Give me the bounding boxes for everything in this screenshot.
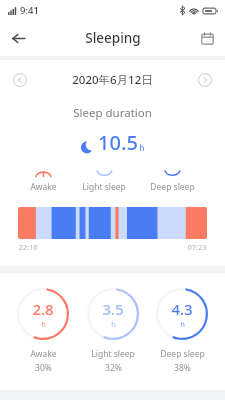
staticText: 4.3 bbox=[171, 299, 193, 319]
staticText: 9:41 bbox=[20, 4, 39, 17]
staticText: 32% bbox=[105, 362, 122, 374]
staticText: Awake bbox=[30, 348, 57, 360]
staticText: 38% bbox=[174, 362, 191, 374]
staticText: h bbox=[139, 142, 145, 154]
staticText: Deep sleep bbox=[150, 181, 195, 193]
button[interactable]: 4.3 bbox=[155, 287, 209, 374]
button[interactable]: 2.8 bbox=[16, 287, 70, 374]
staticText: Awake bbox=[30, 181, 57, 193]
staticText: 2.8 bbox=[32, 299, 54, 319]
button[interactable]: Back bbox=[0, 20, 36, 56]
staticText: 10.5 bbox=[98, 129, 138, 156]
staticText: Sleeping bbox=[85, 29, 141, 47]
staticText: 3.5 bbox=[102, 299, 124, 319]
button[interactable]: Next day bbox=[195, 70, 215, 90]
staticText: 2020年6月12日 bbox=[72, 72, 153, 88]
staticText: 22:16 bbox=[18, 242, 38, 252]
button[interactable]: 3.5 bbox=[86, 287, 140, 374]
staticText: 30% bbox=[35, 362, 52, 374]
staticText: h bbox=[180, 319, 185, 329]
staticText: Light sleep bbox=[91, 348, 135, 360]
button[interactable]: Calendar bbox=[189, 20, 225, 56]
staticText: h bbox=[41, 319, 46, 329]
staticText: Light sleep bbox=[82, 181, 126, 193]
staticText: h bbox=[111, 319, 116, 329]
staticText: Sleep duration bbox=[73, 105, 152, 121]
staticText: Deep sleep bbox=[160, 348, 205, 360]
staticText: 07:23 bbox=[187, 242, 207, 252]
button[interactable]: Previous day bbox=[10, 70, 30, 90]
